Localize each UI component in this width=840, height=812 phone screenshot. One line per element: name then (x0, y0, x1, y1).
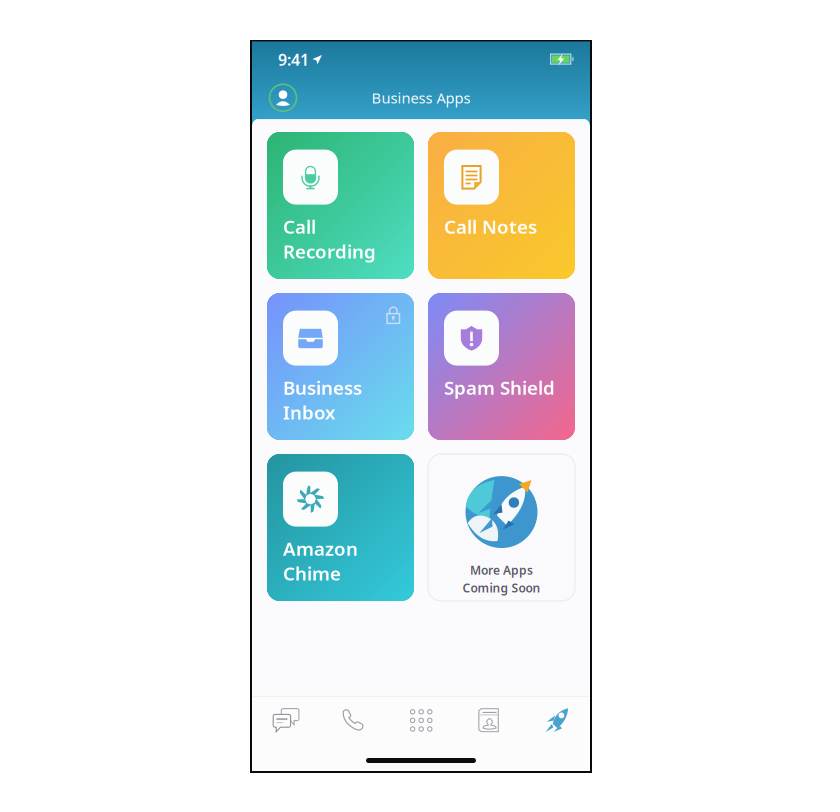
staticText: Spam Shield (444, 375, 555, 400)
button[interactable]: Business Apps (543, 707, 569, 733)
staticText: Business Inbox (283, 375, 362, 425)
staticText: Call Recording (283, 214, 376, 264)
button[interactable]: Profile (270, 85, 296, 111)
staticText: Business Apps (371, 88, 470, 107)
staticText: More Apps (470, 562, 533, 578)
button[interactable]: Contacts (478, 708, 499, 733)
staticText: Coming Soon (462, 580, 540, 596)
button[interactable]: Amazon Chime (267, 454, 414, 601)
button[interactable]: More Apps (428, 454, 575, 601)
button[interactable]: Messages (272, 708, 299, 733)
button[interactable]: Call Recording (267, 132, 414, 279)
button[interactable]: Spam Shield (428, 293, 575, 440)
button[interactable]: Business Inbox (267, 293, 414, 440)
button[interactable]: Keypad (410, 709, 432, 731)
staticText: 9:41 (278, 49, 309, 70)
staticText: Amazon Chime (283, 536, 358, 586)
button[interactable]: Calls (341, 708, 365, 732)
button[interactable]: Call Notes (428, 132, 575, 279)
staticText: Call Notes (444, 214, 537, 239)
